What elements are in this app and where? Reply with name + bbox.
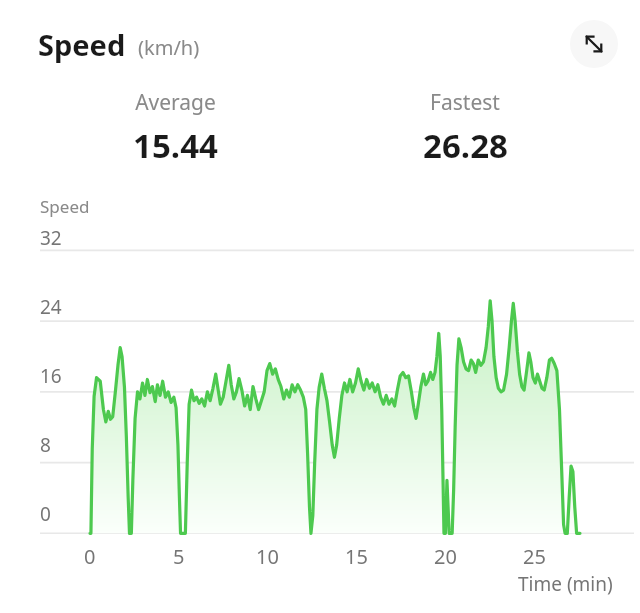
staticText: 15	[345, 543, 368, 570]
staticText: 24	[40, 294, 62, 320]
staticText: Speed	[38, 25, 126, 64]
staticText: 25	[523, 543, 546, 570]
button[interactable]: Average	[30, 88, 320, 168]
staticText: 16	[40, 363, 62, 389]
staticText: 10	[256, 543, 279, 570]
staticText: Time (min)	[518, 571, 613, 597]
staticText: (km/h)	[138, 34, 200, 61]
staticText: 15.44	[133, 123, 218, 168]
staticText: 26.28	[423, 123, 508, 168]
staticText: 0	[40, 501, 51, 527]
staticText: Fastest	[430, 88, 500, 117]
staticText: Speed	[40, 195, 90, 218]
staticText: 8	[40, 432, 51, 458]
staticText: 5	[173, 543, 185, 570]
staticText: 0	[84, 543, 96, 570]
staticText: 32	[40, 225, 62, 251]
button[interactable]: Expand chart	[570, 20, 618, 68]
staticText: 20	[434, 543, 457, 570]
staticText: Average	[135, 88, 216, 117]
button[interactable]: Fastest	[320, 88, 610, 168]
